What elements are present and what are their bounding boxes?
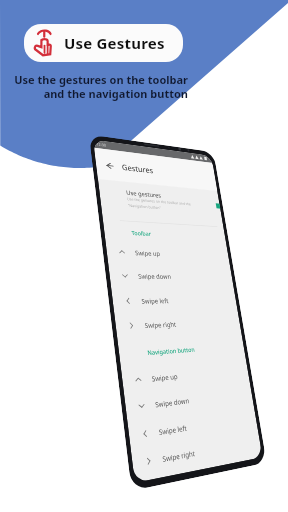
- button[interactable]: Swipe up: [105, 240, 230, 266]
- staticText: Swipe up: [151, 372, 178, 384]
- staticText: Swipe down: [155, 396, 190, 410]
- staticText: Use Gestures: [64, 33, 165, 53]
- staticText: Swipe right: [162, 448, 196, 464]
- button[interactable]: Swipe left: [111, 288, 237, 314]
- staticText: Navigation button: [147, 346, 196, 357]
- button[interactable]: Swipe left: [127, 405, 258, 450]
- staticText: 12:30: [96, 142, 107, 148]
- staticText: Gestures: [121, 162, 154, 176]
- staticText: Swipe left: [141, 296, 169, 306]
- button[interactable]: Swipe right: [131, 429, 262, 478]
- staticText: Swipe up: [134, 248, 161, 258]
- button[interactable]: Swipe down: [124, 380, 253, 421]
- button[interactable]: Use Gestures: [24, 24, 183, 62]
- staticText: Toolbar: [131, 229, 152, 238]
- button[interactable]: Swipe up: [121, 357, 250, 394]
- button[interactable]: Swipe right: [114, 310, 241, 339]
- button[interactable]: Swipe down: [108, 263, 234, 288]
- staticText: Use the gestures on the toolbar and the …: [127, 196, 192, 212]
- button[interactable]: [98, 178, 223, 226]
- staticText: Swipe left: [158, 423, 188, 437]
- staticText: Use the gestures on the toolbar and the …: [0, 72, 188, 101]
- staticText: Use gestures: [126, 188, 162, 199]
- button[interactable]: Back: [102, 158, 116, 173]
- staticText: Swipe right: [144, 320, 177, 330]
- staticText: Swipe down: [138, 272, 172, 281]
